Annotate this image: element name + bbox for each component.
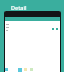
- staticText: Detail: [11, 4, 27, 11]
